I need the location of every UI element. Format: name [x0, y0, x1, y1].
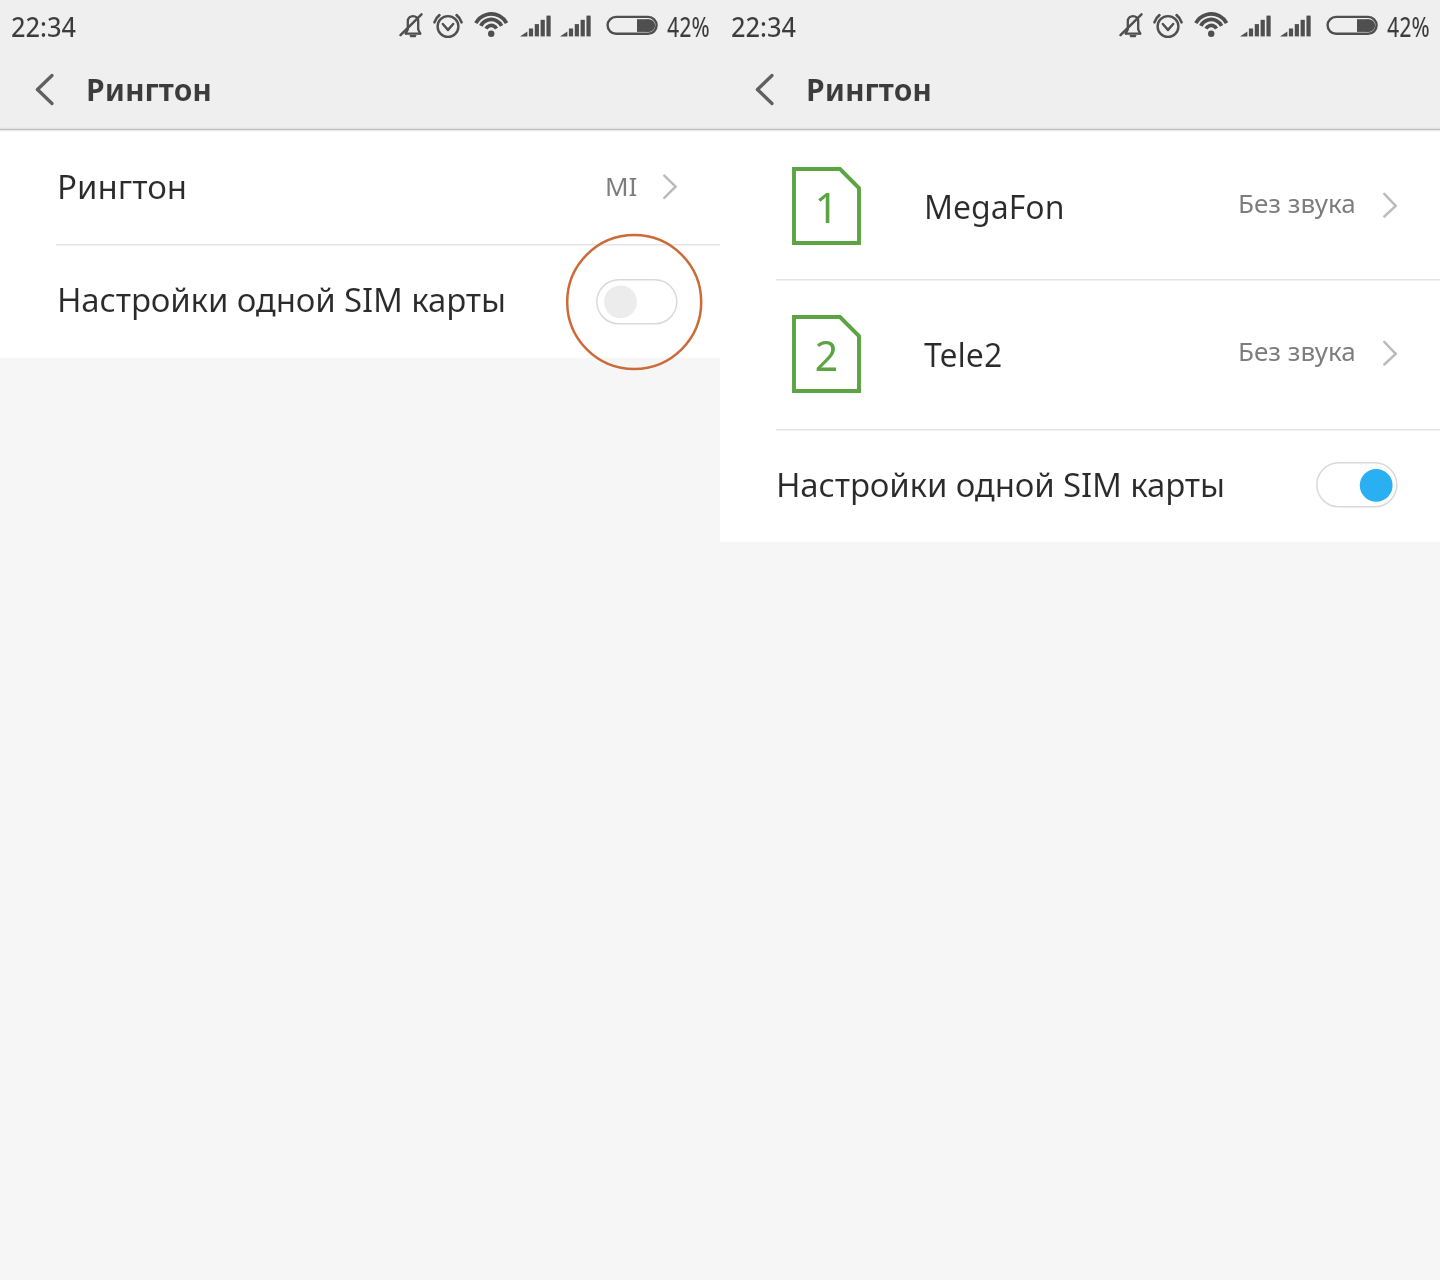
staticText: Настройки одной SIM карты [57, 277, 506, 322]
staticText: Без звука [1238, 185, 1356, 220]
button[interactable]: Single SIM settings toggle, on [1316, 462, 1398, 508]
staticText: MI [605, 168, 638, 203]
button[interactable]: Настройки одной SIM карты [0, 245, 720, 353]
button[interactable]: Back [8, 55, 78, 129]
staticText: Рингтон [57, 164, 188, 209]
button[interactable]: Настройки одной SIM карты [720, 429, 1440, 543]
staticText: 22:34 [11, 8, 77, 45]
button[interactable]: 2 [720, 287, 1440, 425]
staticText: 42% [1387, 8, 1430, 45]
staticText: MegaFon [924, 185, 1065, 229]
button[interactable]: Back [728, 55, 798, 129]
staticText: Без звука [1238, 333, 1356, 368]
staticText: 1 [794, 179, 859, 243]
staticText: Tele2 [924, 333, 1003, 377]
staticText: 42% [667, 8, 710, 45]
button[interactable]: 1 [720, 139, 1440, 277]
button[interactable]: Рингтон [0, 129, 720, 244]
staticText: Рингтон [806, 69, 932, 110]
staticText: Рингтон [86, 69, 212, 110]
staticText: 2 [794, 327, 859, 391]
button[interactable]: Single SIM settings toggle, off [596, 279, 678, 325]
staticText: 22:34 [731, 8, 797, 45]
staticText: Настройки одной SIM карты [776, 462, 1225, 507]
